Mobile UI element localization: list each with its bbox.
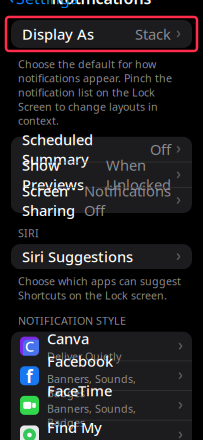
staticText: Banners, Sounds, Badges xyxy=(47,401,136,430)
staticText: Banners, Sounds, Badges xyxy=(47,372,136,400)
staticText: Stack xyxy=(135,24,171,44)
staticText: Facebook xyxy=(47,351,113,371)
staticText: Off xyxy=(150,139,171,159)
staticText: Deliver Quietly xyxy=(47,349,121,363)
staticText: Choose the default for how notifications… xyxy=(18,57,172,128)
button[interactable]: f xyxy=(11,361,192,390)
button[interactable]: Screen Sharing xyxy=(11,188,192,213)
button[interactable]: Show Previews xyxy=(11,162,192,187)
staticText: Notifications xyxy=(51,0,151,8)
button[interactable]: C xyxy=(11,332,192,361)
button[interactable]: Scheduled Summary xyxy=(11,137,192,162)
staticText: Settings xyxy=(16,0,78,8)
staticText: Find My xyxy=(47,418,102,437)
staticText: FaceTime xyxy=(47,381,112,400)
staticText: Screen Sharing xyxy=(22,181,75,220)
staticText: Siri Suggestions xyxy=(22,247,133,266)
staticText: f xyxy=(26,365,33,388)
button[interactable]: Siri Suggestions xyxy=(11,244,192,269)
staticText: Canva xyxy=(47,329,89,348)
staticText: Scheduled Summary xyxy=(22,130,93,169)
staticText: Choose which apps can suggest Shortcuts … xyxy=(18,274,181,302)
staticText: SIRI xyxy=(18,226,39,240)
button[interactable]: Find My xyxy=(11,420,192,440)
staticText: Display As xyxy=(22,24,94,44)
staticText: Notifications Off xyxy=(84,181,171,220)
button[interactable]: Settings xyxy=(0,0,86,12)
button[interactable]: Display As xyxy=(11,20,192,48)
staticText: NOTIFICATION STYLE xyxy=(18,313,126,328)
button[interactable]: FaceTime xyxy=(11,391,192,420)
staticText: When Unlocked xyxy=(106,155,171,194)
staticText: C xyxy=(25,336,34,356)
staticText: Show Previews xyxy=(22,155,84,194)
